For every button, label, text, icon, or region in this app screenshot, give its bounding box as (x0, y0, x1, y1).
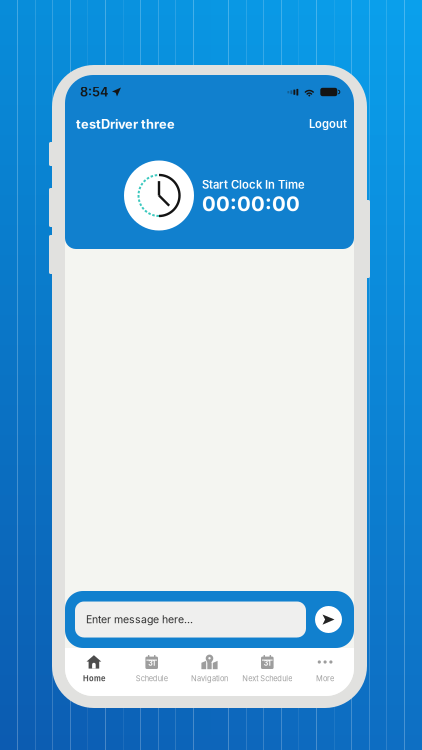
button[interactable]: 31 (238, 648, 296, 696)
staticText: Next Schedule (242, 674, 292, 683)
staticText: Enter message here... (86, 613, 193, 626)
staticText: testDriver three (76, 116, 175, 132)
staticText: More (316, 674, 334, 683)
staticText: 31 (148, 659, 155, 667)
staticText: Navigation (191, 674, 228, 683)
button[interactable]: Logout (309, 111, 347, 137)
button[interactable]: Home (65, 648, 123, 696)
staticText: 8:54 (80, 84, 108, 100)
staticText: 31 (264, 659, 271, 667)
staticText: Home (83, 674, 105, 683)
button[interactable]: 31 (123, 648, 181, 696)
staticText: Schedule (136, 674, 168, 683)
button[interactable]: Navigation (181, 648, 238, 696)
button[interactable]: More (296, 648, 354, 696)
staticText: Start Clock In Time (202, 178, 305, 191)
staticText: 00:00:00 (202, 191, 300, 216)
staticText: Logout (309, 117, 347, 131)
button[interactable]: Send (315, 606, 342, 633)
